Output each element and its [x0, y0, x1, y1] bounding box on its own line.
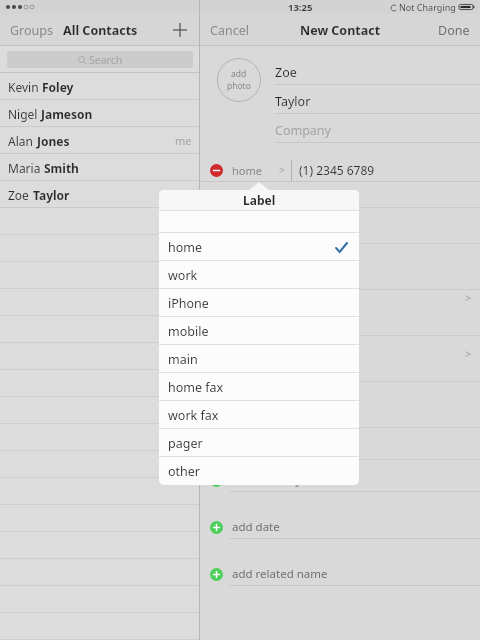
staticText: Label [243, 192, 276, 208]
staticText: > [465, 290, 472, 305]
button[interactable]: Groups [10, 22, 53, 39]
staticText: add related name [232, 566, 328, 582]
button[interactable]: add related name [200, 562, 480, 586]
staticText: Maria [8, 160, 44, 176]
button[interactable]: pager [159, 429, 359, 457]
button[interactable]: home fax [159, 373, 359, 401]
staticText: Nigel [8, 106, 41, 122]
button[interactable]: Zoe [0, 181, 200, 208]
staticText: Taylor [33, 187, 70, 203]
staticText: add date [232, 519, 280, 535]
button[interactable]: add birthday [200, 468, 480, 492]
staticText: > [279, 163, 285, 177]
staticText: home [168, 239, 203, 256]
staticText: me [175, 133, 192, 148]
button[interactable]: Taylor [275, 89, 480, 114]
button[interactable]: Kevin [0, 73, 200, 100]
staticText: Zoe [8, 187, 33, 203]
button[interactable]: Cancel [210, 22, 249, 39]
staticText: 13:25 [288, 1, 313, 14]
button[interactable]: Company [275, 118, 480, 143]
button[interactable]: Alan [0, 127, 200, 154]
staticText: home [232, 163, 262, 178]
staticText: Alan [8, 133, 37, 149]
staticText: Taylor [275, 93, 311, 110]
button[interactable]: Nigel [0, 100, 200, 127]
staticText: Search [89, 53, 123, 67]
button[interactable]: home [200, 158, 480, 182]
button[interactable]: iPhone [159, 289, 359, 317]
button[interactable]: Done [438, 22, 470, 39]
staticText: Smith [44, 160, 79, 176]
button[interactable]: mobile [159, 317, 359, 345]
staticText: add birthday [232, 472, 302, 488]
button[interactable]: Search [7, 51, 193, 68]
button[interactable]: Add photo [217, 58, 261, 102]
staticText: pager [168, 435, 203, 452]
staticText: Foley [42, 79, 74, 95]
staticText: work [168, 267, 198, 284]
staticText: New Contact [300, 22, 381, 39]
button[interactable]: Maria [0, 154, 200, 181]
staticText: other [168, 463, 201, 480]
staticText: iPhone [168, 295, 209, 312]
staticText: main [168, 351, 198, 368]
staticText: (1) 2345 6789 [299, 162, 375, 178]
button[interactable]: Zoe [275, 60, 480, 85]
staticText: Kevin [8, 79, 42, 95]
button[interactable]: home [159, 233, 359, 261]
button[interactable]: other [159, 457, 359, 485]
button[interactable]: main [159, 345, 359, 373]
staticText: photo [227, 80, 251, 92]
staticText: > [465, 346, 472, 361]
staticText: home fax [168, 379, 224, 396]
staticText: Jones [37, 133, 70, 149]
staticText: Zoe [275, 64, 297, 81]
staticText: mobile [168, 323, 209, 340]
staticText: Not Charging [399, 1, 456, 13]
button[interactable]: add date [200, 515, 480, 539]
staticText: add [231, 68, 247, 80]
staticText: work fax [168, 407, 219, 424]
button[interactable]: work [159, 261, 359, 289]
staticText: All Contacts [63, 22, 138, 39]
button[interactable]: work fax [159, 401, 359, 429]
staticText: Company [275, 122, 331, 139]
button[interactable]: Add contact [170, 20, 190, 40]
staticText: Jameson [41, 106, 93, 122]
